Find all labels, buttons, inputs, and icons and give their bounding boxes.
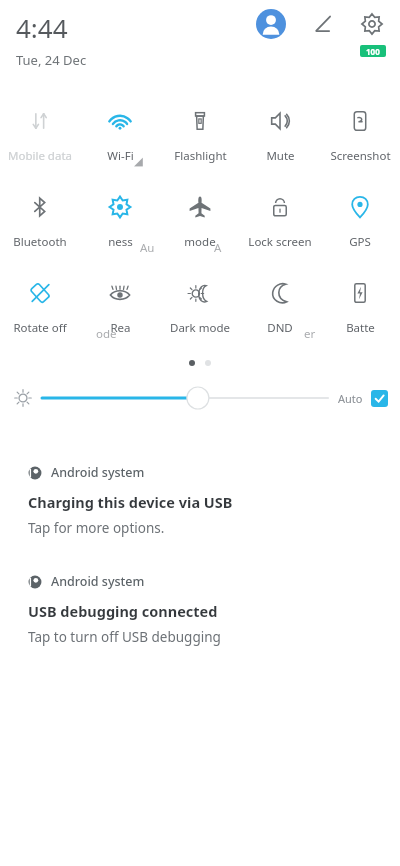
button[interactable]: Android system xyxy=(0,573,400,646)
button[interactable]: User profile xyxy=(256,9,286,39)
button[interactable]: Bluetooth xyxy=(0,186,80,258)
button[interactable]: Auto brightness xyxy=(371,390,388,407)
staticText: A xyxy=(214,240,222,256)
staticText: Tue, 24 Dec xyxy=(16,51,87,69)
button[interactable]: Rea xyxy=(80,272,160,344)
button[interactable]: Edit xyxy=(308,9,338,39)
staticText: Flashlight xyxy=(174,148,227,164)
button[interactable]: Mute xyxy=(240,100,320,172)
staticText: USB debugging connected xyxy=(28,601,218,621)
staticText: Mute xyxy=(266,148,295,164)
staticText: Au xyxy=(140,240,155,256)
staticText: ◢ xyxy=(134,154,143,167)
button[interactable]: Settings xyxy=(356,8,388,40)
button[interactable]: Batte xyxy=(320,272,400,344)
staticText: Batte xyxy=(346,320,375,336)
button[interactable]: ness xyxy=(80,186,160,258)
staticText: mode xyxy=(184,234,216,250)
staticText: er xyxy=(304,326,316,342)
button[interactable]: Rotate off xyxy=(0,272,80,344)
staticText: Lock screen xyxy=(248,234,312,250)
staticText: Rotate off xyxy=(13,320,67,336)
staticText: Wi-Fi xyxy=(107,148,134,164)
button[interactable]: Flashlight xyxy=(160,100,240,172)
staticText: Mobile data xyxy=(8,148,72,164)
staticText: Dark mode xyxy=(170,320,230,336)
button[interactable]: Lock screen xyxy=(240,186,320,258)
staticText: Android system xyxy=(51,573,145,590)
staticText: ode xyxy=(96,326,117,342)
staticText: Charging this device via USB xyxy=(28,492,233,512)
staticText: Tap to turn off USB debugging xyxy=(28,628,221,646)
staticText: DND xyxy=(267,320,293,336)
staticText: Auto xyxy=(338,391,363,406)
button[interactable]: Dark mode xyxy=(160,272,240,344)
staticText: Rea xyxy=(110,320,131,336)
staticText: GPS xyxy=(349,234,371,250)
button[interactable]: Brightness xyxy=(42,381,328,415)
button[interactable]: Android system xyxy=(0,464,400,537)
staticText: Tap for more options. xyxy=(28,519,165,537)
staticText: Screenshot xyxy=(330,148,391,164)
button[interactable]: Wi-Fi xyxy=(80,100,160,172)
button[interactable]: Mobile data xyxy=(0,100,80,172)
staticText: 100 xyxy=(366,46,380,57)
button[interactable]: mode xyxy=(160,186,240,258)
button[interactable]: Screenshot xyxy=(320,100,400,172)
staticText: Bluetooth xyxy=(13,234,67,250)
staticText: 4:44 xyxy=(16,10,68,45)
button[interactable]: GPS xyxy=(320,186,400,258)
staticText: Android system xyxy=(51,464,145,481)
staticText: ness xyxy=(108,234,133,250)
button[interactable]: DND xyxy=(240,272,320,344)
